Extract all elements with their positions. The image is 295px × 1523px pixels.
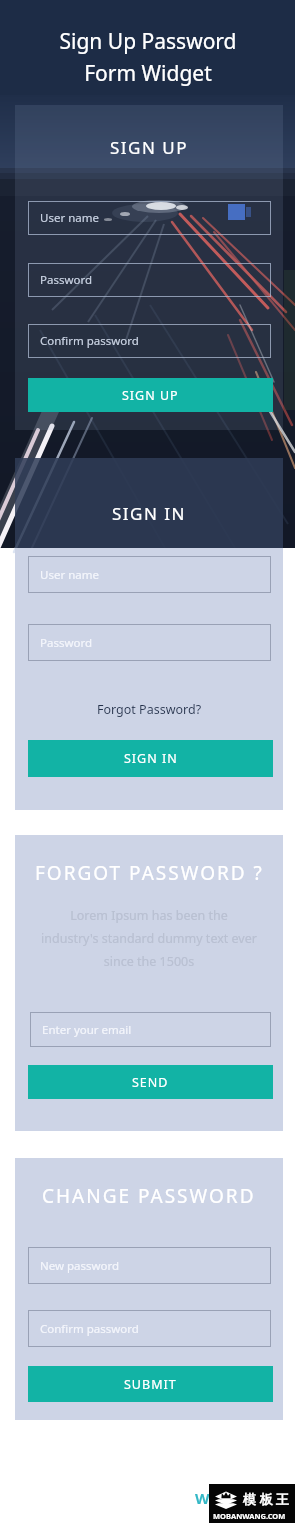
staticText: SIGN UP <box>110 136 189 159</box>
button[interactable]: Password <box>28 263 271 297</box>
staticText: CHANGE PASSWORD <box>42 1183 256 1209</box>
staticText: Lorem Ipsum has been the industry's stan… <box>41 907 257 970</box>
staticText: Confirm password <box>40 333 139 349</box>
button[interactable]: Password <box>28 624 271 661</box>
button[interactable]: SIGN IN <box>28 740 273 777</box>
staticText: SIGN IN <box>112 502 186 525</box>
button[interactable]: User name <box>28 556 271 593</box>
staticText: Confirm password <box>40 1321 139 1337</box>
button[interactable]: User name <box>28 201 271 235</box>
staticText: Sign Up Password Form Widget <box>59 27 237 87</box>
button[interactable]: Confirm password <box>28 1310 271 1347</box>
button[interactable]: Enter your email <box>30 1012 271 1047</box>
staticText: SIGN IN <box>124 750 178 767</box>
button[interactable]: New password <box>28 1247 271 1284</box>
staticText: Forgot Password? <box>97 701 202 718</box>
staticText: New password <box>40 1258 120 1274</box>
staticText: FORGOT PASSWORD ? <box>35 860 264 886</box>
staticText: SIGN UP <box>122 387 179 404</box>
button[interactable]: SUBMIT <box>28 1366 273 1402</box>
button[interactable]: SIGN UP <box>28 378 273 412</box>
staticText: Enter your email <box>42 1022 132 1038</box>
staticText: SEND <box>132 1074 169 1091</box>
staticText: User name <box>40 567 99 583</box>
staticText: Password <box>40 272 93 288</box>
staticText: SUBMIT <box>124 1376 177 1393</box>
staticText: 模 板 王 <box>243 1490 289 1508</box>
button[interactable]: Forgot Password? <box>15 694 283 724</box>
staticText: User name <box>40 210 99 226</box>
button[interactable]: Confirm password <box>28 324 271 358</box>
staticText: Password <box>40 635 93 651</box>
staticText: W <box>195 1488 210 1508</box>
button[interactable]: SEND <box>28 1065 273 1099</box>
staticText: MOBANWANG.COM <box>213 1511 286 1521</box>
button[interactable]: 模 板 王 <box>209 1484 295 1523</box>
